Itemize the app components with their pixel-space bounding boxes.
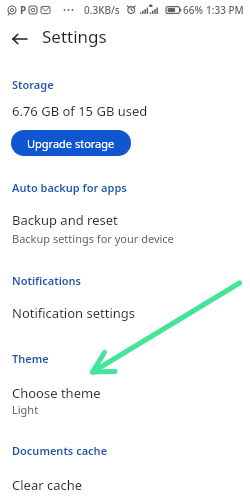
staticText: Choose theme [12, 384, 101, 402]
staticText: Clear cache [12, 476, 83, 494]
staticText: 1:33 PM [206, 3, 244, 17]
button[interactable]: Clear cache [0, 476, 250, 500]
staticText: P [20, 3, 27, 17]
staticText: 6.76 GB of 15 GB used [12, 102, 148, 120]
button[interactable]: Notification settings [0, 304, 250, 322]
staticText: Upgrade storage [27, 136, 115, 151]
button[interactable]: Upgrade storage [11, 130, 131, 156]
button[interactable]: Backup and reset [0, 211, 250, 244]
button[interactable]: 6.76 GB of 15 GB used [0, 102, 250, 120]
staticText: 66% [183, 3, 203, 17]
staticText: Backup settings for your device [12, 231, 174, 246]
staticText: Light [12, 402, 39, 417]
staticText: Backup and reset [12, 211, 118, 229]
staticText: Theme [12, 351, 49, 366]
staticText: 0.3KB/s [84, 3, 120, 17]
staticText: Documents cache [12, 443, 108, 458]
staticText: Auto backup for apps [12, 180, 127, 195]
button[interactable]: Choose theme [0, 384, 250, 417]
staticText: Notifications [12, 273, 82, 288]
staticText: Settings [42, 25, 107, 48]
staticText: Notification settings [12, 304, 136, 322]
staticText: Storage [12, 77, 54, 92]
button[interactable]: Back [7, 26, 32, 51]
